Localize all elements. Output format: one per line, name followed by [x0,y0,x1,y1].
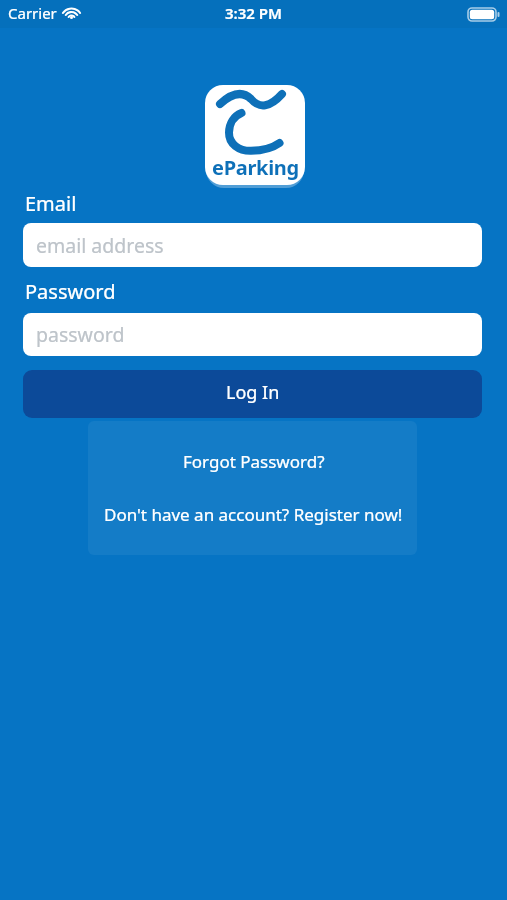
staticText: Don't have an account? Register now! [104,503,403,526]
staticText: Carrier [8,3,57,23]
button[interactable]: Don't have an account? Register now! [104,503,403,526]
button[interactable]: email address [23,223,482,267]
button[interactable]: Log In [23,370,482,418]
staticText: Forgot Password? [183,450,325,473]
staticText: Log In [226,380,280,405]
staticText: password [36,321,125,348]
staticText: email address [36,232,164,259]
staticText: Password [25,278,116,305]
staticText: eParking [212,154,299,181]
staticText: 3:32 PM [225,3,282,23]
button[interactable]: password [23,313,482,356]
button[interactable]: Forgot Password? [183,450,325,473]
staticText: Email [25,190,77,217]
